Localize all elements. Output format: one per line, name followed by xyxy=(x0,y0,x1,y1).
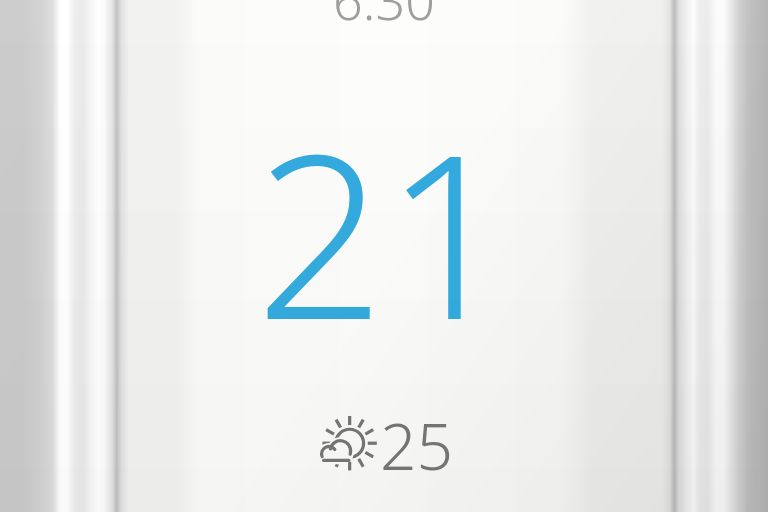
button[interactable]: 21 xyxy=(255,77,514,385)
staticText: 21 xyxy=(255,77,514,385)
staticText: 25 xyxy=(380,402,454,489)
button[interactable]: Outdoor weather, partly sunny, 25 degree… xyxy=(314,402,454,489)
button[interactable]: 6:30 xyxy=(333,0,435,35)
staticText: 6:30 xyxy=(333,0,435,35)
